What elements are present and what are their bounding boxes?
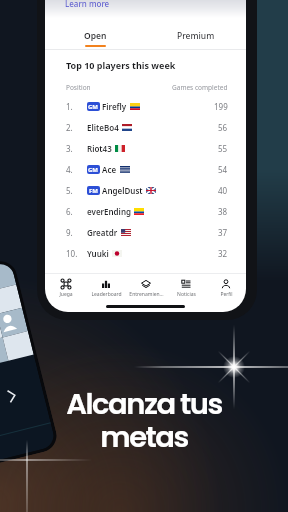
button[interactable]: Premium	[145, 26, 246, 49]
button[interactable]: 9.	[45, 222, 246, 243]
button[interactable]: 10.	[45, 243, 246, 264]
button[interactable]: Juega	[45, 279, 86, 298]
button[interactable]: Noticias	[166, 279, 206, 298]
staticText: Learn more	[65, 0, 110, 9]
staticText: Position	[66, 83, 91, 92]
staticText: Noticias	[177, 291, 196, 298]
staticText: 5.	[66, 185, 73, 196]
staticText: 199	[214, 101, 228, 112]
button[interactable]: 5.	[45, 180, 246, 201]
button[interactable]: Entrenamien...	[126, 279, 166, 298]
staticText: 2.	[66, 122, 73, 133]
staticText: Perfil	[220, 291, 233, 298]
button[interactable]: Leaderboard	[86, 279, 126, 298]
staticText: Firefly	[102, 101, 127, 112]
staticText: 10.	[66, 248, 78, 259]
button[interactable]: 1.	[45, 96, 246, 117]
staticText: 55	[218, 143, 228, 154]
staticText: 37	[218, 227, 228, 238]
staticText: 6.	[66, 206, 73, 217]
staticText: 9.	[66, 227, 73, 238]
staticText: Riot43	[87, 143, 112, 154]
staticText: GM	[88, 166, 99, 174]
staticText: Top 10 players this week	[66, 59, 176, 71]
staticText: AngelDust	[102, 185, 143, 196]
staticText: 40	[218, 185, 228, 196]
staticText: 4.	[66, 164, 73, 175]
staticText: Open	[84, 30, 107, 42]
staticText: everEnding	[87, 206, 131, 217]
staticText: 3.	[66, 143, 73, 154]
staticText: 54	[218, 164, 228, 175]
staticText: Greatdr	[87, 227, 118, 238]
button[interactable]: 6.	[45, 201, 246, 222]
staticText: Entrenamien...	[129, 291, 164, 298]
staticText: Ace	[102, 164, 117, 175]
staticText: Leaderboard	[91, 291, 122, 298]
staticText: Alcanza tus metas	[66, 384, 222, 457]
button[interactable]: Perfil	[206, 279, 246, 298]
staticText: Games completed	[172, 83, 228, 92]
staticText: GM	[88, 103, 99, 111]
staticText: 1.	[66, 101, 73, 112]
button[interactable]: Open	[45, 26, 145, 49]
button[interactable]: 2.	[45, 117, 246, 138]
staticText: 38	[218, 206, 228, 217]
staticText: FM	[89, 187, 98, 195]
staticText: 32	[218, 248, 228, 259]
staticText: Juega	[59, 291, 73, 298]
staticText: Premium	[177, 30, 215, 42]
button[interactable]: 4.	[45, 159, 246, 180]
staticText: Yuuki	[87, 248, 109, 259]
button[interactable]: 3.	[45, 138, 246, 159]
staticText: EliteBo4	[87, 122, 119, 133]
staticText: 56	[218, 122, 228, 133]
